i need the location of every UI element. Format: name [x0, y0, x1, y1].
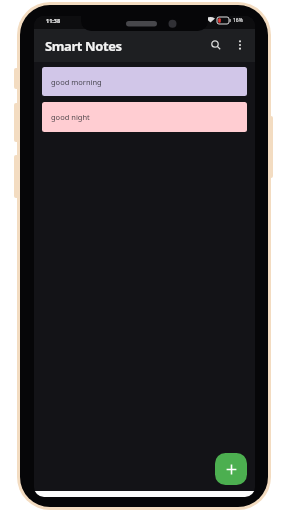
staticText: 16%	[233, 17, 243, 24]
staticText: good night	[51, 112, 90, 122]
button[interactable]	[208, 37, 224, 53]
staticText: Smart Notes	[45, 37, 122, 55]
staticText: good morning	[51, 77, 102, 87]
staticText: 11:38	[46, 17, 61, 24]
button[interactable]: good morning	[42, 67, 247, 96]
button[interactable]	[232, 37, 248, 53]
button[interactable]: good night	[42, 102, 247, 132]
button[interactable]	[215, 453, 247, 485]
